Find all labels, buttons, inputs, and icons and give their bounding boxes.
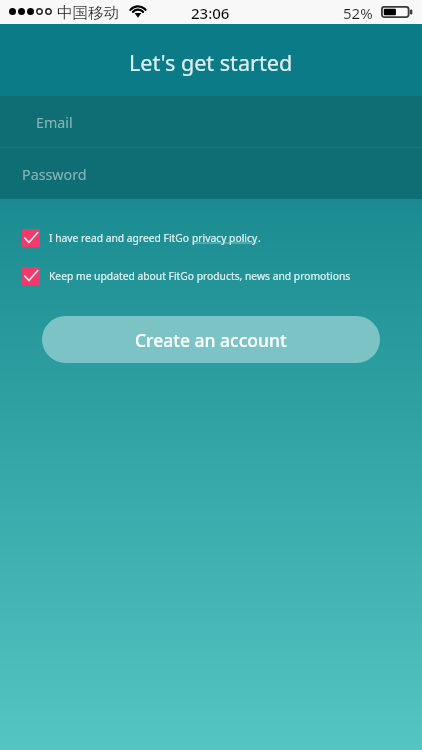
staticText: Create an account <box>135 328 287 352</box>
staticText: 23:06 <box>191 3 230 23</box>
staticText: Let's get started <box>129 48 293 77</box>
button[interactable]: Email <box>0 96 422 147</box>
staticText: 52% <box>343 3 373 23</box>
staticText: Keep me updated about FitGo products, ne… <box>49 269 351 283</box>
staticText: . <box>258 231 261 245</box>
staticText: Password <box>22 165 87 184</box>
staticText: privacy policy <box>192 231 258 245</box>
button[interactable]: Password <box>0 148 422 199</box>
button[interactable]: Receive updates <box>0 267 422 285</box>
other: Agree to privacy policy <box>22 229 40 247</box>
button[interactable]: Agree to privacy policy <box>0 229 422 247</box>
button[interactable]: Create an account <box>42 316 380 363</box>
staticText: I have read and agreed FitGo <box>49 231 192 245</box>
staticText: Email <box>36 113 73 132</box>
staticText: 中国移动 <box>57 3 119 23</box>
other: Receive updates <box>22 267 40 285</box>
